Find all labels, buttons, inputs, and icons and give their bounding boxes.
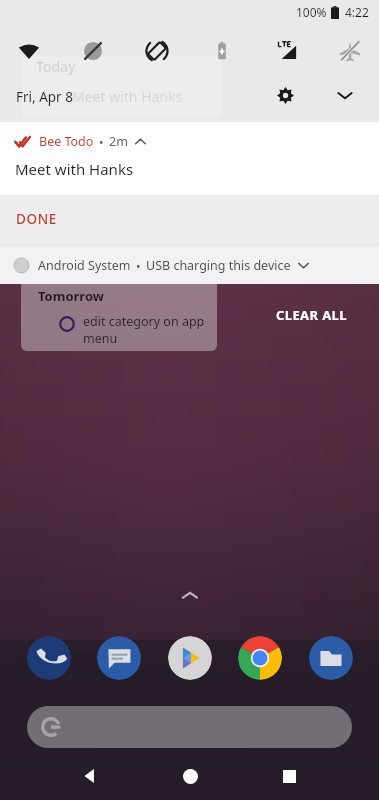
button[interactable]: Bee Todo bbox=[0, 122, 379, 195]
staticText: 4:22 bbox=[345, 4, 369, 20]
button[interactable]: Airplane mode bbox=[335, 36, 365, 66]
staticText: Meet with Hanks bbox=[72, 87, 183, 106]
button[interactable]: DONE bbox=[8, 202, 65, 236]
staticText: USB charging this device bbox=[146, 257, 291, 274]
button[interactable]: Settings bbox=[270, 80, 300, 110]
button[interactable]: Messages bbox=[97, 636, 141, 680]
button[interactable]: Auto-rotate bbox=[142, 36, 172, 66]
button[interactable]: Files bbox=[309, 636, 353, 680]
staticText: Today bbox=[36, 57, 76, 76]
button[interactable]: Wi-Fi bbox=[14, 36, 44, 66]
staticText: DONE bbox=[16, 210, 57, 228]
button[interactable]: Home bbox=[170, 756, 210, 796]
button[interactable]: Search bbox=[27, 706, 352, 748]
button[interactable]: Expand bbox=[330, 80, 360, 110]
button[interactable]: Do not disturb bbox=[78, 36, 108, 66]
button[interactable]: Back bbox=[70, 756, 110, 796]
staticText: CLEAR ALL bbox=[276, 306, 347, 324]
staticText: 100% bbox=[296, 4, 327, 20]
button[interactable]: Mobile data bbox=[271, 36, 301, 66]
button[interactable]: Battery saver bbox=[207, 36, 237, 66]
staticText: Fri, Apr 8 bbox=[16, 88, 73, 106]
button[interactable]: Phone bbox=[27, 636, 71, 680]
staticText: Android System bbox=[38, 257, 131, 274]
staticText: Meet with Hanks bbox=[15, 159, 134, 179]
staticText: edit category on app menu bbox=[83, 313, 205, 346]
button[interactable]: Recents bbox=[269, 756, 309, 796]
button[interactable]: Android System bbox=[0, 247, 379, 284]
staticText: Bee Todo bbox=[39, 133, 94, 150]
button[interactable]: CLEAR ALL bbox=[276, 300, 347, 330]
other: Open app drawer bbox=[179, 589, 201, 601]
button[interactable]: Tomorrow bbox=[21, 283, 217, 351]
button[interactable]: Play Store bbox=[168, 636, 212, 680]
staticText: 2m bbox=[109, 133, 128, 150]
staticText: • bbox=[136, 258, 141, 274]
button[interactable]: Chrome bbox=[238, 636, 282, 680]
staticText: Tomorrow bbox=[38, 287, 104, 305]
staticText: • bbox=[99, 134, 104, 150]
